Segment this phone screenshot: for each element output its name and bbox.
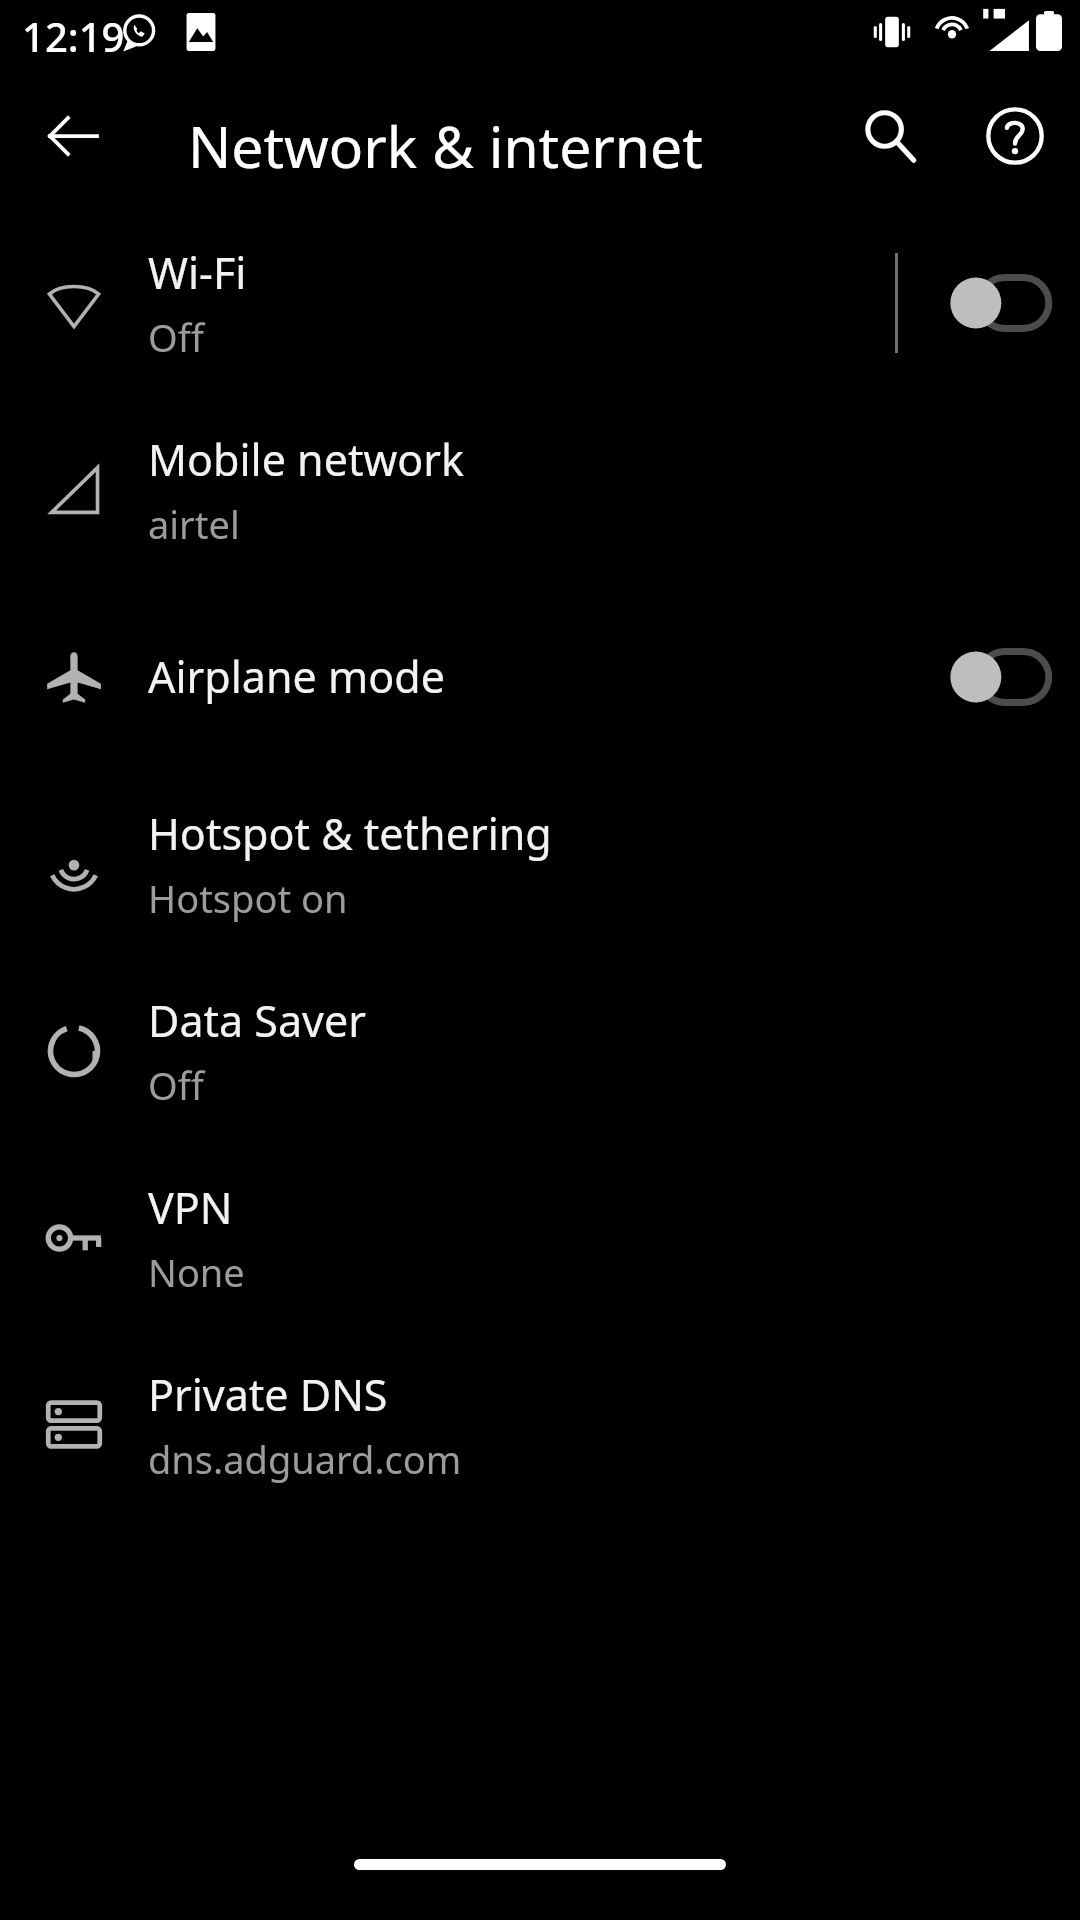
button[interactable]: Wi-Fi toggle [948, 274, 1053, 332]
button[interactable]: Data Saver [0, 957, 1080, 1144]
staticText: Hotspot & tethering [148, 804, 552, 863]
staticText: Off [148, 311, 204, 363]
button[interactable]: Wi-Fi [0, 209, 1080, 396]
button[interactable]: Help [967, 88, 1063, 184]
button[interactable]: VPN [0, 1144, 1080, 1331]
button[interactable]: Back [25, 88, 121, 184]
staticText: Mobile network [148, 430, 464, 489]
staticText: dns.adguard.com [148, 1433, 462, 1485]
staticText: None [148, 1246, 245, 1298]
staticText: Wi-Fi [148, 243, 247, 302]
staticText: airtel [148, 498, 240, 550]
staticText: 12:19 [22, 9, 125, 63]
staticText: Network & internet [188, 107, 703, 185]
button[interactable]: Airplane mode toggle [948, 648, 1053, 706]
staticText: Hotspot on [148, 872, 348, 924]
button[interactable]: Airplane mode [0, 583, 1080, 770]
staticText: VPN [148, 1178, 233, 1237]
button[interactable]: Mobile network [0, 396, 1080, 583]
staticText: Airplane mode [148, 647, 445, 706]
staticText: Private DNS [148, 1365, 388, 1424]
staticText: Off [148, 1059, 204, 1111]
button[interactable]: Private DNS [0, 1331, 1080, 1518]
button[interactable]: Search [842, 88, 938, 184]
staticText: Data Saver [148, 991, 366, 1050]
button[interactable]: Hotspot & tethering [0, 770, 1080, 957]
